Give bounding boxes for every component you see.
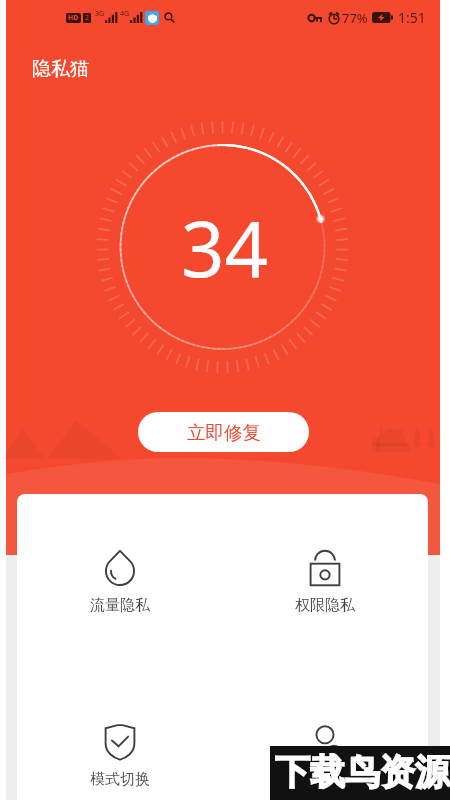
staticText: 4G <box>120 9 130 19</box>
staticText: 2 <box>85 13 90 23</box>
staticText: 隐私猫 <box>32 57 89 81</box>
button[interactable]: 隐私清理 <box>222 724 428 800</box>
staticText: 隐私清理 <box>295 770 355 789</box>
staticText: 模式切换 <box>90 770 150 789</box>
staticText: 流量隐私 <box>90 596 150 615</box>
button[interactable]: 权限隐私 <box>222 550 428 628</box>
button[interactable]: 立即修复 <box>138 412 309 452</box>
staticText: 下载鸟资源 <box>275 750 450 794</box>
staticText: 1:51 <box>398 8 426 27</box>
button[interactable]: 流量隐私 <box>17 550 222 628</box>
staticText: 权限隐私 <box>295 596 355 615</box>
staticText: 3G <box>95 9 105 19</box>
staticText: HD <box>68 13 79 23</box>
staticText: 77% <box>342 9 368 27</box>
staticText: 34 <box>181 196 268 300</box>
staticText: 立即修复 <box>187 421 261 444</box>
button[interactable]: 模式切换 <box>17 724 222 800</box>
